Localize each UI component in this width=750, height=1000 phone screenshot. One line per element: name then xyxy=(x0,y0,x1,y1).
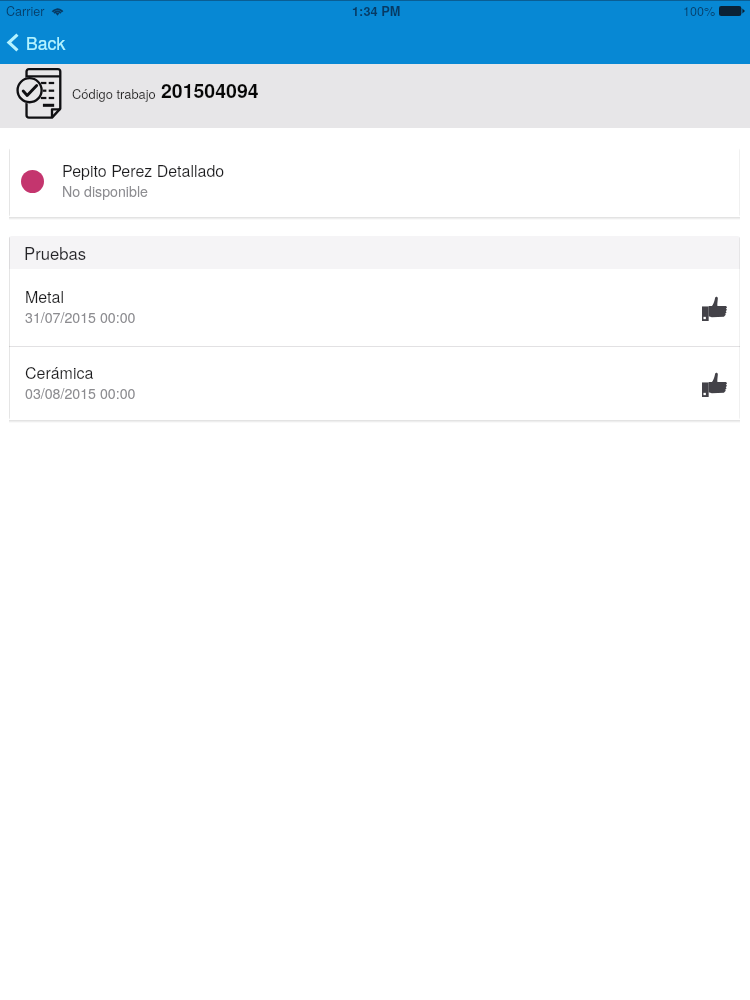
staticText: Back xyxy=(26,30,66,55)
staticText: 201504094 xyxy=(161,76,259,104)
button[interactable]: Metal xyxy=(9,269,740,346)
staticText: No disponible xyxy=(62,181,148,201)
staticText: 1:34 PM xyxy=(352,2,401,20)
staticText: 03/08/2015 00:00 xyxy=(25,383,136,403)
button[interactable]: Cerámica xyxy=(9,347,740,420)
button[interactable]: Pepito Perez Detallado xyxy=(9,148,740,217)
staticText: Metal xyxy=(25,285,64,308)
staticText: 31/07/2015 00:00 xyxy=(25,307,136,327)
staticText: 100% xyxy=(683,2,716,20)
staticText: Cerámica xyxy=(25,361,94,384)
staticText: Pruebas xyxy=(24,241,87,265)
button[interactable]: Back xyxy=(0,25,80,60)
staticText: Código trabajo xyxy=(72,84,156,102)
staticText: Pepito Perez Detallado xyxy=(62,159,225,182)
other: Prueba aprobada xyxy=(702,295,727,321)
staticText: Carrier xyxy=(6,2,45,20)
other: Prueba aprobada xyxy=(702,371,727,397)
